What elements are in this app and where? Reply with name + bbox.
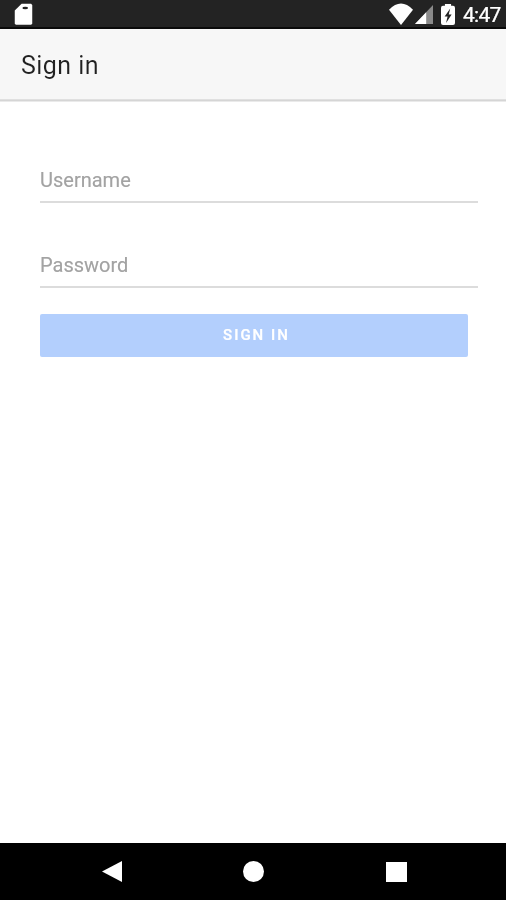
button[interactable]: Password bbox=[40, 253, 478, 288]
staticText: SIGN IN bbox=[223, 326, 290, 344]
staticText: Sign in bbox=[21, 51, 100, 80]
button[interactable]: Back bbox=[82, 843, 142, 900]
staticText: 4:47 bbox=[463, 3, 501, 28]
button[interactable]: SIGN IN bbox=[40, 314, 468, 357]
staticText: Username bbox=[40, 168, 131, 191]
button[interactable]: Username bbox=[40, 168, 478, 203]
staticText: Password bbox=[40, 253, 129, 276]
button[interactable]: Recent apps bbox=[366, 843, 426, 900]
button[interactable]: Home bbox=[223, 843, 283, 900]
